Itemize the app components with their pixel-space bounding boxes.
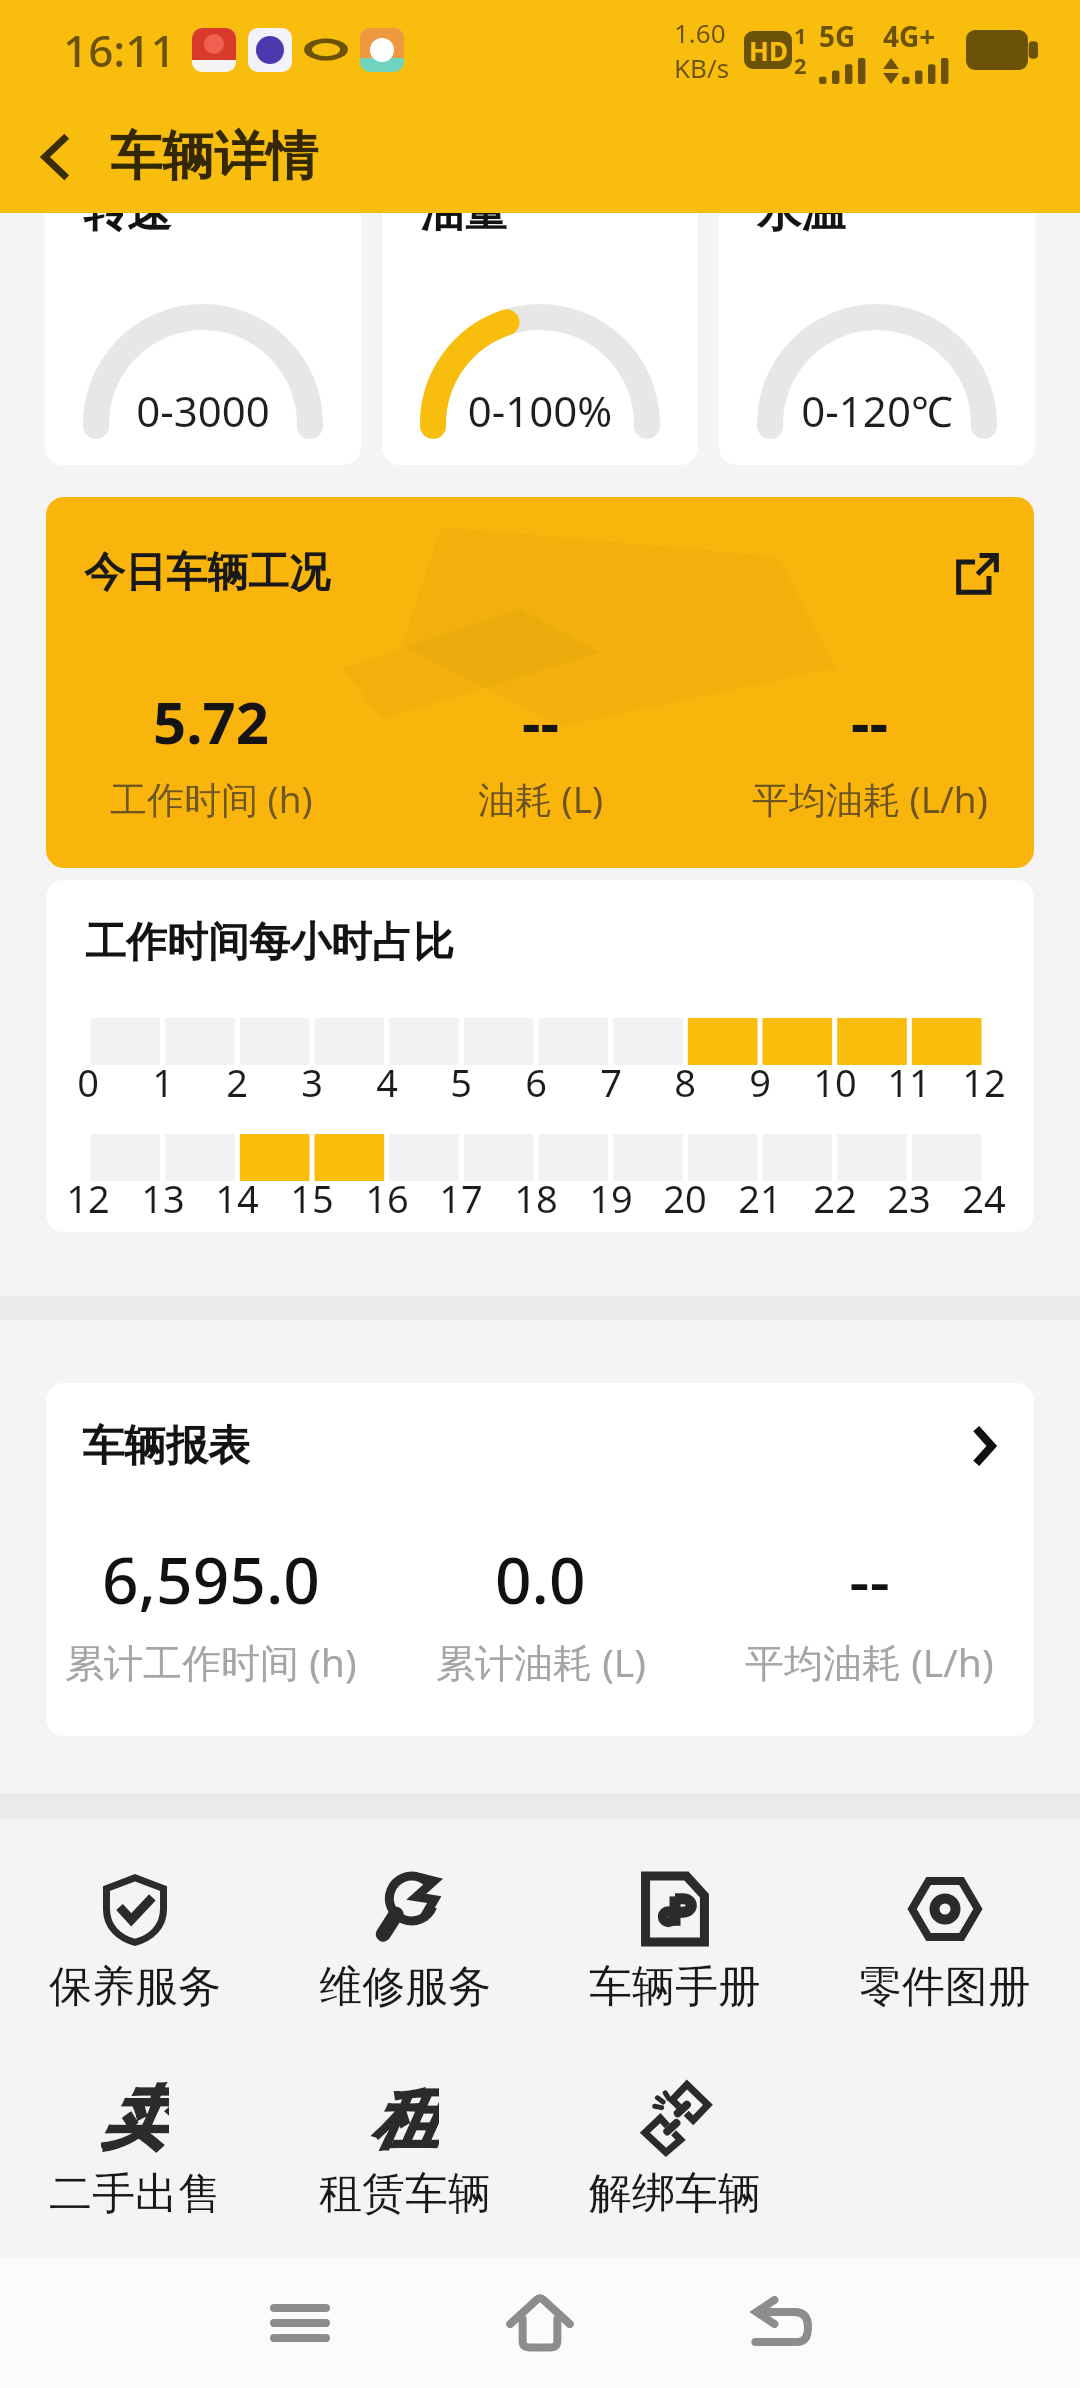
staticText: 平均油耗 (L/h): [752, 773, 988, 824]
button[interactable]: Vehicle report: [950, 1411, 1020, 1481]
button[interactable]: 今日车辆工况: [46, 497, 1034, 868]
staticText: 6,595.0: [102, 1536, 320, 1623]
staticText: 16:11: [63, 20, 176, 80]
button[interactable]: 转速: [45, 170, 361, 465]
staticText: 工作时间 (h): [110, 773, 313, 824]
button[interactable]: 水温: [719, 170, 1035, 465]
staticText: 零件图册: [859, 1960, 1031, 2014]
staticText: 卖: [101, 2077, 169, 2155]
staticText: 13: [113, 1172, 213, 1224]
staticText: 16: [337, 1172, 437, 1224]
staticText: 22: [785, 1172, 885, 1224]
staticText: 车辆手册: [589, 1960, 761, 2014]
button[interactable]: 油量: [382, 170, 698, 465]
staticText: 0.0: [495, 1536, 586, 1623]
staticText: 平均油耗 (L/h): [745, 1635, 994, 1688]
staticText: KB/s: [674, 50, 730, 85]
button[interactable]: 维修服务: [270, 1870, 540, 2014]
button[interactable]: 车辆报表: [46, 1383, 1034, 1736]
staticText: 1: [113, 1056, 213, 1108]
button[interactable]: 保养服务: [0, 1870, 270, 2014]
button[interactable]: Home: [485, 2268, 595, 2378]
button[interactable]: 零件图册: [810, 1870, 1080, 2014]
staticText: 累计油耗 (L): [436, 1635, 646, 1688]
staticText: --: [522, 682, 560, 761]
staticText: 8: [635, 1056, 735, 1108]
staticText: 20: [635, 1172, 735, 1224]
staticText: 租赁车辆: [319, 2167, 491, 2221]
staticText: 6: [486, 1056, 586, 1108]
button[interactable]: 车辆手册: [540, 1870, 810, 2014]
staticText: 21: [710, 1172, 810, 1224]
staticText: 维修服务: [319, 1960, 491, 2014]
staticText: HD: [749, 33, 788, 68]
staticText: 5.72: [153, 682, 269, 761]
button[interactable]: 租: [270, 2077, 540, 2221]
staticText: 4G+: [883, 17, 936, 55]
staticText: 19: [561, 1172, 661, 1224]
staticText: 累计工作时间 (h): [65, 1635, 357, 1688]
staticText: 租: [371, 2077, 439, 2155]
staticText: 14: [187, 1172, 287, 1224]
staticText: 今日车辆工况: [84, 547, 330, 599]
button[interactable]: 卖: [0, 2077, 270, 2221]
staticText: 23: [859, 1172, 959, 1224]
staticText: 1: [794, 20, 807, 50]
staticText: 车辆详情: [110, 124, 318, 190]
staticText: 保养服务: [49, 1960, 221, 2014]
button[interactable]: Back: [0, 102, 110, 212]
staticText: 油耗 (L): [478, 773, 604, 824]
staticText: 1.60: [674, 15, 726, 50]
staticText: 水温: [757, 184, 845, 239]
staticText: 4: [337, 1056, 437, 1108]
staticText: 15: [262, 1172, 362, 1224]
staticText: 2: [794, 50, 807, 80]
staticText: 解绑车辆: [589, 2167, 761, 2221]
staticText: 0-120℃: [719, 382, 1035, 439]
staticText: 5: [411, 1056, 511, 1108]
staticText: 油量: [420, 184, 508, 239]
button[interactable]: Recents: [245, 2268, 355, 2378]
staticText: 10: [785, 1056, 885, 1108]
staticText: 12: [934, 1056, 1034, 1108]
staticText: 二手出售: [49, 2167, 221, 2221]
staticText: 24: [934, 1172, 1034, 1224]
staticText: 车辆报表: [82, 1420, 250, 1473]
staticText: 0-3000: [45, 382, 361, 439]
staticText: 18: [486, 1172, 586, 1224]
staticText: --: [851, 682, 889, 761]
staticText: 3: [262, 1056, 362, 1108]
staticText: 2: [187, 1056, 287, 1108]
staticText: 5G: [819, 17, 856, 55]
staticText: --: [849, 1536, 891, 1623]
staticText: 17: [411, 1172, 511, 1224]
staticText: 0-100%: [382, 382, 698, 439]
staticText: 工作时间每小时占比: [85, 917, 454, 969]
button[interactable]: Open details: [941, 537, 1013, 609]
staticText: 9: [710, 1056, 810, 1108]
staticText: 7: [561, 1056, 661, 1108]
staticText: 0: [46, 1056, 138, 1108]
button[interactable]: 解绑车辆: [540, 2077, 810, 2221]
button[interactable]: Back: [725, 2268, 835, 2378]
staticText: 11: [859, 1056, 959, 1108]
staticText: 转速: [83, 184, 171, 239]
staticText: 12: [46, 1172, 138, 1224]
